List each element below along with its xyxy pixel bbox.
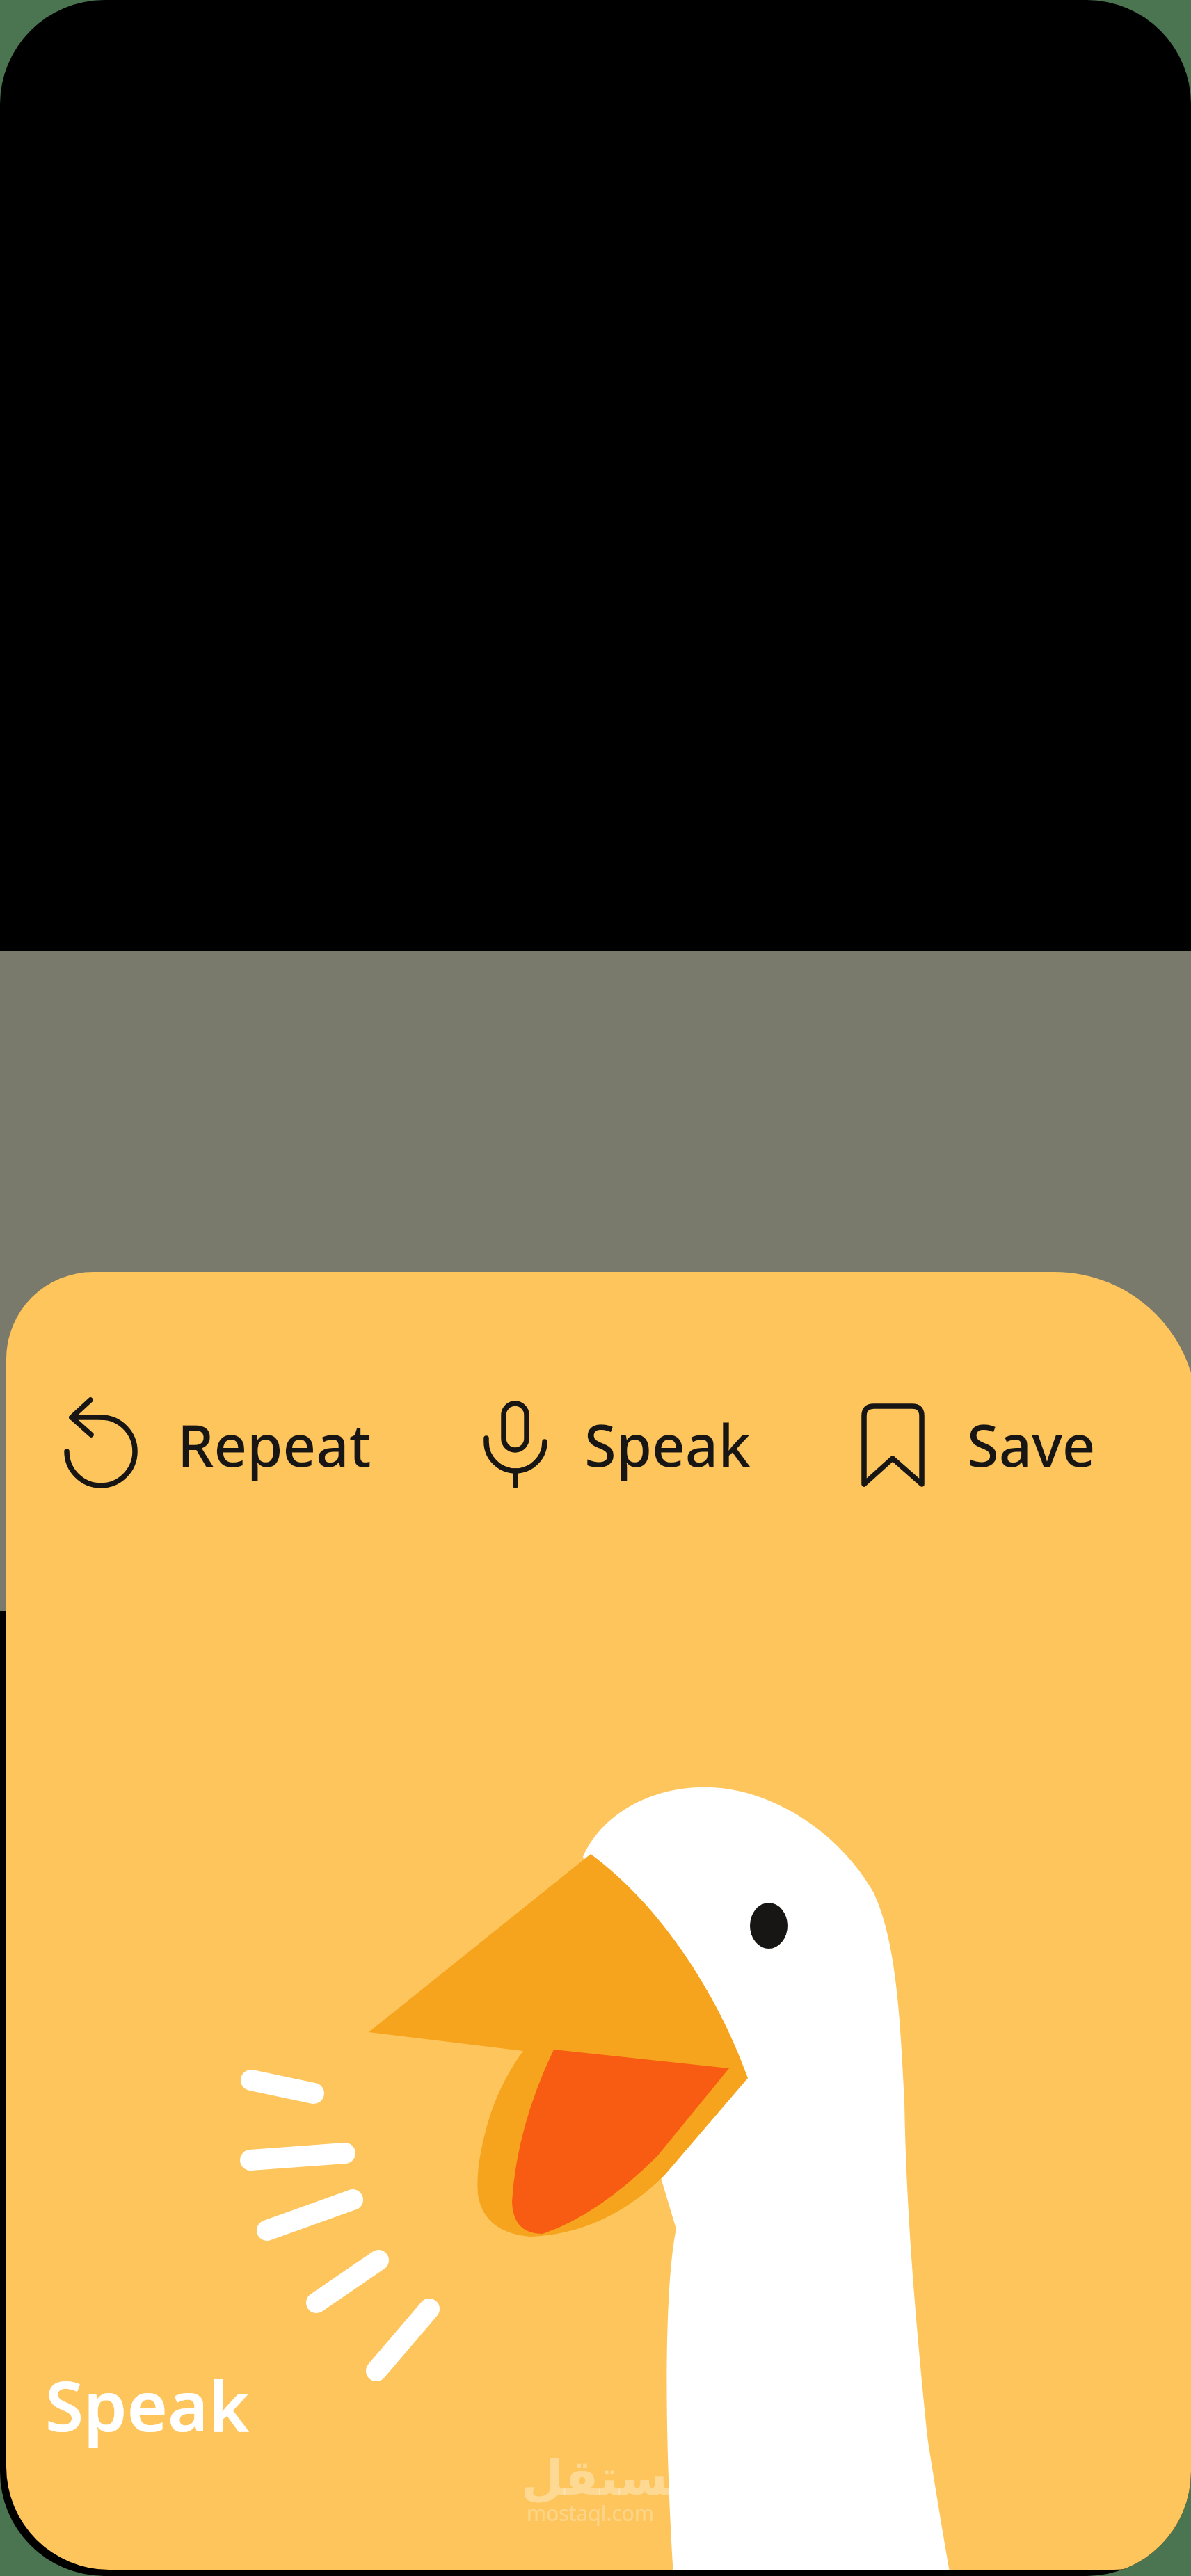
button[interactable]: Speak	[480, 1398, 758, 1492]
staticText: mostaql.com	[527, 2499, 655, 2527]
button[interactable]: Save	[859, 1401, 1106, 1492]
staticText: Save	[967, 1405, 1096, 1483]
button[interactable]: Repeat	[61, 1401, 379, 1492]
staticText: Speak	[584, 1405, 751, 1483]
staticText: مستقل	[521, 2449, 700, 2506]
staticText: Speak	[45, 2357, 250, 2452]
staticText: Repeat	[177, 1405, 371, 1483]
